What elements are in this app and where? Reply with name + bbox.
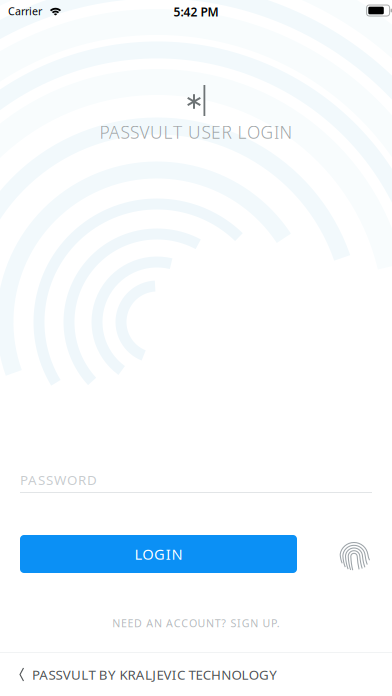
- staticText: PASSWORD: [20, 471, 97, 489]
- staticText: LOGIN: [134, 544, 183, 564]
- button[interactable]: LOGIN: [20, 535, 297, 573]
- staticText: PASSVULT BY KRALJEVIC TECHNOLOGY: [32, 666, 277, 683]
- staticText: NEED AN ACCOUNT? SIGN UP.: [112, 616, 280, 630]
- staticText: 5:42 PM: [173, 4, 218, 20]
- button[interactable]: NEED AN ACCOUNT? SIGN UP.: [0, 615, 392, 631]
- button[interactable]: Touch ID: [332, 535, 376, 579]
- staticText: Carrier: [8, 4, 42, 18]
- staticText: PASSVULT USER LOGIN: [99, 120, 292, 143]
